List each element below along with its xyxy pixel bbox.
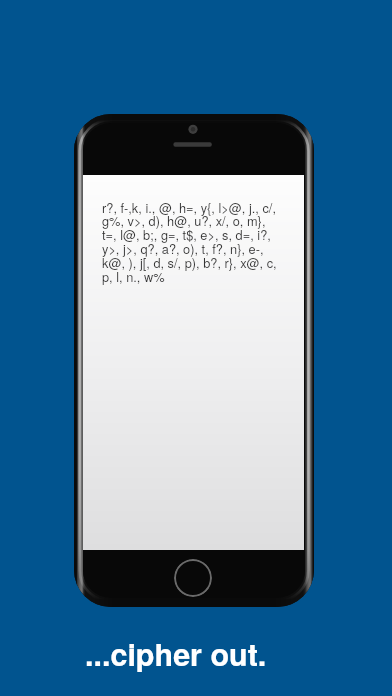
staticText: r?, f-,k, i., @, h=, y{, l>@, j., c/, g%… — [102, 198, 277, 286]
button[interactable]: Home — [174, 559, 212, 597]
staticText: ...cipher out. — [85, 632, 267, 676]
